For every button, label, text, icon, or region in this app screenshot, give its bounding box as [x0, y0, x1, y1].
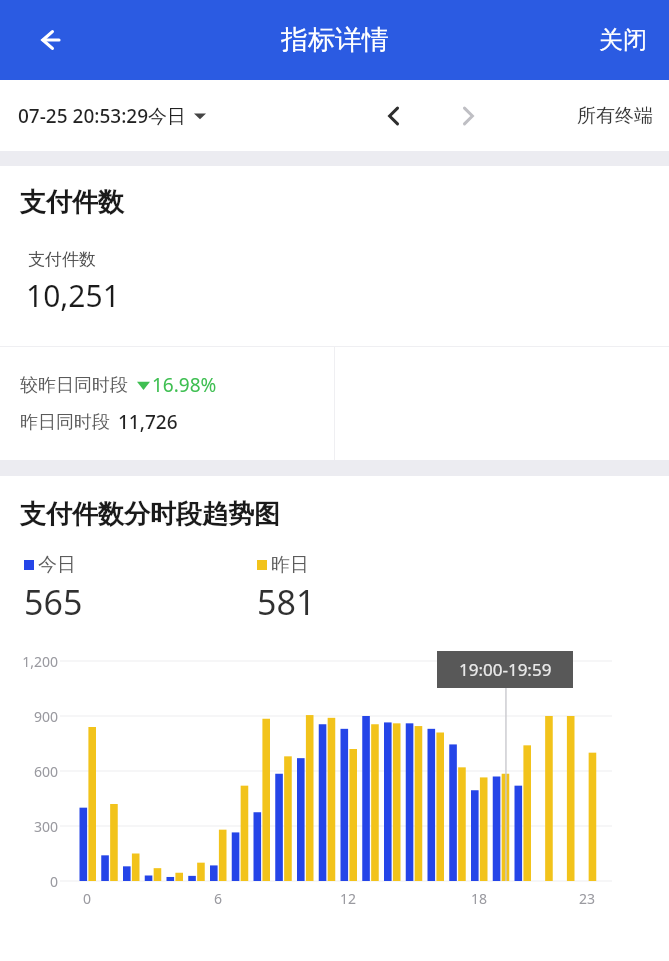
staticText: 11,726 [118, 409, 178, 435]
button[interactable]: Next [444, 92, 492, 140]
staticText: 6 [198, 889, 238, 908]
staticText: 19:00-19:59 [459, 658, 552, 681]
staticText: 较昨日同时段 [20, 374, 128, 397]
staticText: 565 [24, 579, 83, 625]
button[interactable]: 所有终端 [561, 92, 669, 140]
staticText: 581 [257, 579, 316, 625]
staticText: 12 [328, 889, 368, 908]
staticText: 支付件数 [28, 249, 96, 270]
button[interactable]: 关闭 [577, 11, 669, 69]
staticText: 昨日同时段 [20, 411, 110, 434]
staticText: 指标详情 [281, 23, 389, 57]
staticText: 支付件数分时段趋势图 [20, 498, 280, 531]
staticText: 支付件数 [20, 186, 124, 219]
staticText: 300 [0, 817, 58, 836]
staticText: 1,200 [0, 652, 58, 671]
staticText: 今日 [38, 553, 76, 577]
staticText: 关闭 [599, 25, 647, 55]
staticText: 0 [67, 889, 107, 908]
button[interactable]: Previous [370, 92, 418, 140]
staticText: 900 [0, 707, 58, 726]
staticText: 18 [459, 889, 499, 908]
staticText: 16.98% [152, 372, 217, 398]
staticText: 所有终端 [577, 104, 653, 128]
button[interactable]: 07-25 20:53:29今日 [0, 95, 214, 137]
staticText: 23 [567, 889, 607, 908]
staticText: 昨日 [271, 553, 309, 577]
staticText: 07-25 20:53:29今日 [18, 103, 187, 129]
staticText: 0 [0, 872, 58, 891]
staticText: 10,251 [26, 275, 120, 316]
button[interactable]: Back [22, 12, 78, 68]
staticText: 600 [0, 762, 58, 781]
